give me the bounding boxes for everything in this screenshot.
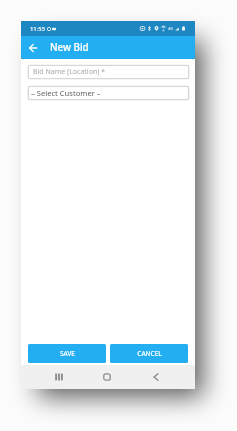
staticText: 4G bbox=[168, 26, 173, 31]
button[interactable]: Back bbox=[27, 42, 39, 54]
staticText: Bid Name (Location) * bbox=[33, 67, 106, 77]
button[interactable]: Home bbox=[97, 365, 117, 389]
staticText: – Select Customer – bbox=[31, 88, 101, 98]
staticText: SAVE bbox=[60, 349, 75, 358]
button[interactable]: – Select Customer – bbox=[28, 86, 189, 100]
staticText: New Bid bbox=[50, 41, 89, 54]
button[interactable]: Bid Name (Location) * bbox=[28, 65, 189, 79]
button[interactable]: Recent apps bbox=[49, 365, 69, 389]
button[interactable]: CANCEL bbox=[110, 344, 188, 363]
staticText: CANCEL bbox=[137, 349, 162, 358]
button[interactable]: Back bbox=[146, 365, 166, 389]
button[interactable]: SAVE bbox=[28, 344, 106, 363]
staticText: 11:55 bbox=[30, 25, 46, 33]
